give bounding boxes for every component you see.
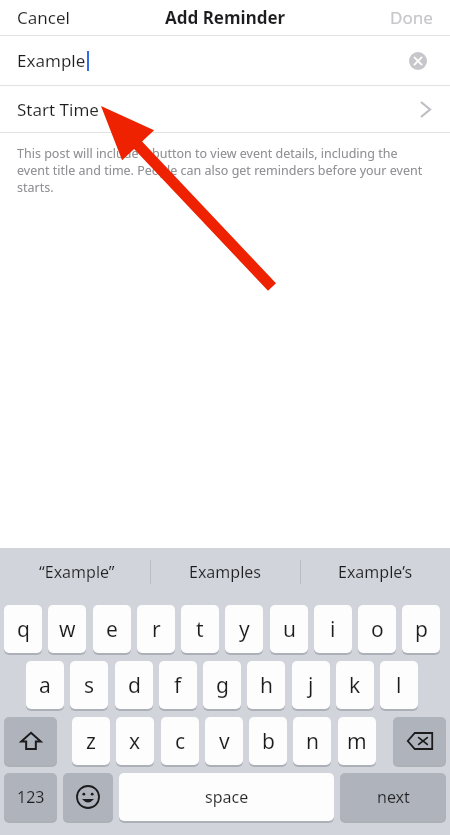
staticText: Example’s bbox=[338, 561, 413, 583]
staticText: k bbox=[349, 671, 361, 700]
staticText: g bbox=[216, 671, 229, 700]
button[interactable]: w bbox=[48, 605, 86, 653]
staticText: l bbox=[396, 671, 402, 700]
button[interactable]: g bbox=[203, 661, 241, 709]
staticText: v bbox=[219, 727, 230, 756]
staticText: Examples bbox=[189, 561, 261, 583]
button[interactable]: Examples bbox=[153, 548, 297, 596]
button[interactable]: space bbox=[119, 773, 334, 821]
button[interactable]: r bbox=[137, 605, 175, 653]
button[interactable]: Example’s bbox=[303, 548, 447, 596]
button[interactable]: t bbox=[181, 605, 219, 653]
button[interactable]: d bbox=[115, 661, 153, 709]
staticText: n bbox=[306, 727, 319, 756]
staticText: a bbox=[39, 671, 51, 700]
staticText: x bbox=[129, 727, 141, 756]
button[interactable]: i bbox=[314, 605, 352, 653]
staticText: b bbox=[262, 727, 275, 756]
staticText: w bbox=[59, 615, 76, 644]
button[interactable]: e bbox=[93, 605, 131, 653]
staticText: p bbox=[415, 615, 428, 644]
button[interactable]: q bbox=[4, 605, 42, 653]
staticText: This post will include a button to view … bbox=[17, 145, 428, 196]
staticText: f bbox=[174, 671, 182, 700]
button[interactable]: Shift bbox=[4, 717, 57, 765]
button[interactable]: y bbox=[225, 605, 263, 653]
staticText: u bbox=[283, 615, 296, 644]
staticText: e bbox=[106, 615, 118, 644]
button[interactable]: s bbox=[70, 661, 108, 709]
button[interactable]: Cancel bbox=[17, 6, 70, 29]
button[interactable]: v bbox=[205, 717, 243, 765]
staticText: Add Reminder bbox=[165, 6, 286, 29]
staticText: d bbox=[128, 671, 141, 700]
button[interactable]: h bbox=[247, 661, 285, 709]
staticText: c bbox=[175, 727, 186, 756]
button[interactable]: Start Time bbox=[0, 86, 450, 132]
button[interactable]: Example bbox=[0, 36, 450, 85]
staticText: i bbox=[330, 615, 336, 644]
button[interactable]: p bbox=[402, 605, 440, 653]
button[interactable]: k bbox=[336, 661, 374, 709]
button[interactable]: Backspace bbox=[393, 717, 446, 765]
button[interactable]: u bbox=[270, 605, 308, 653]
button[interactable]: c bbox=[161, 717, 199, 765]
staticText: o bbox=[371, 615, 384, 644]
button[interactable]: Done bbox=[390, 6, 433, 29]
button[interactable]: f bbox=[159, 661, 197, 709]
button[interactable]: l bbox=[380, 661, 418, 709]
button[interactable]: Emoji bbox=[63, 773, 113, 821]
button[interactable]: a bbox=[26, 661, 64, 709]
button[interactable]: z bbox=[72, 717, 110, 765]
button[interactable]: b bbox=[249, 717, 287, 765]
staticText: j bbox=[308, 671, 314, 700]
staticText: r bbox=[152, 615, 161, 644]
staticText: 123 bbox=[17, 786, 45, 808]
staticText: q bbox=[17, 615, 30, 644]
staticText: Done bbox=[390, 6, 433, 29]
staticText: h bbox=[260, 671, 273, 700]
button[interactable]: “Example” bbox=[5, 548, 149, 596]
staticText: “Example” bbox=[39, 561, 115, 583]
staticText: next bbox=[377, 786, 410, 808]
staticText: Example bbox=[17, 49, 86, 72]
staticText: s bbox=[84, 671, 95, 700]
staticText: m bbox=[347, 727, 367, 756]
button[interactable]: Clear text bbox=[409, 52, 427, 70]
staticText: Cancel bbox=[17, 6, 70, 29]
button[interactable]: m bbox=[338, 717, 376, 765]
staticText: t bbox=[196, 615, 204, 644]
staticText: y bbox=[239, 615, 250, 644]
button[interactable]: o bbox=[358, 605, 396, 653]
button[interactable]: x bbox=[116, 717, 154, 765]
button[interactable]: j bbox=[292, 661, 330, 709]
staticText: Start Time bbox=[17, 98, 99, 121]
button[interactable]: next bbox=[340, 773, 446, 821]
staticText: space bbox=[205, 786, 249, 808]
button[interactable]: n bbox=[293, 717, 331, 765]
staticText: z bbox=[86, 727, 96, 756]
button[interactable]: 123 bbox=[4, 773, 57, 821]
